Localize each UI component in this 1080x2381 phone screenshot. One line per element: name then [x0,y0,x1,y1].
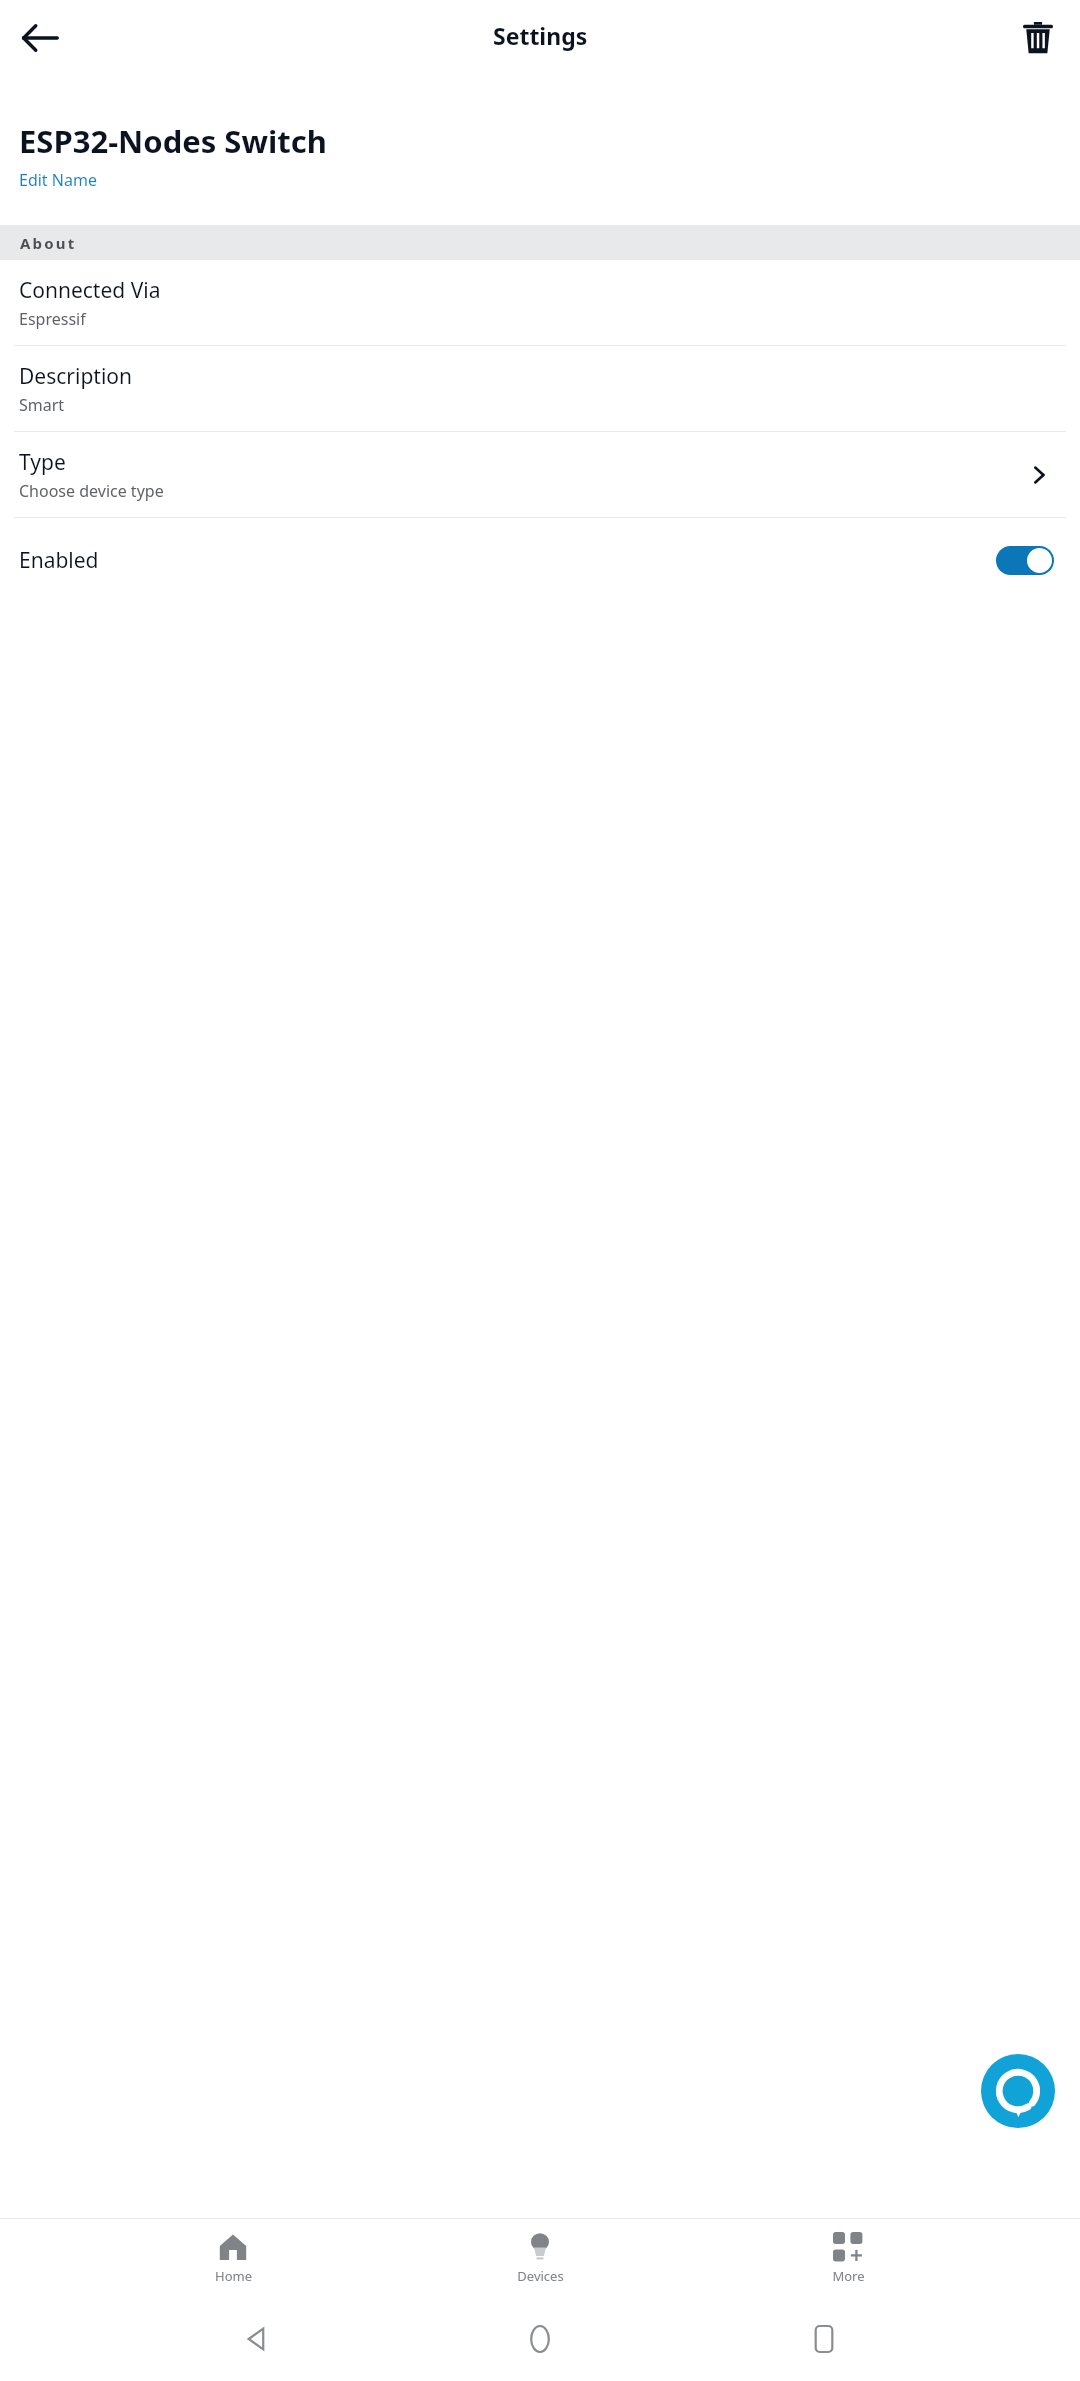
button[interactable]: Enabled [0,518,1080,602]
staticText: Settings [493,20,588,51]
button[interactable]: Edit Name [19,169,97,191]
staticText: Enabled [19,546,99,575]
staticText: Choose device type [19,480,164,502]
staticText: More [832,2267,865,2285]
staticText: Type [19,448,66,477]
staticText: Description [19,362,133,391]
button[interactable]: Home [158,2226,308,2291]
other: Enabled toggle [996,546,1054,575]
staticText: ESP32-Nodes Switch [19,120,327,162]
button[interactable]: Connected Via [0,260,1080,345]
staticText: Home [215,2267,252,2285]
button[interactable]: More [773,2226,923,2291]
button[interactable]: Back [230,2312,284,2366]
button[interactable]: Home [513,2312,567,2366]
staticText: Espressif [19,308,86,330]
button[interactable]: Alexa [981,2054,1055,2128]
button[interactable]: Recent apps [797,2312,851,2366]
staticText: Edit Name [19,169,97,191]
button[interactable]: Description [0,346,1080,431]
staticText: Smart [19,394,65,416]
button[interactable]: Back [12,9,70,67]
staticText: Devices [517,2267,564,2285]
button[interactable]: Devices [465,2226,615,2291]
button[interactable]: Type [0,432,1080,517]
staticText: Connected Via [19,276,161,305]
button[interactable]: Delete [1010,10,1066,66]
staticText: About [20,233,77,253]
